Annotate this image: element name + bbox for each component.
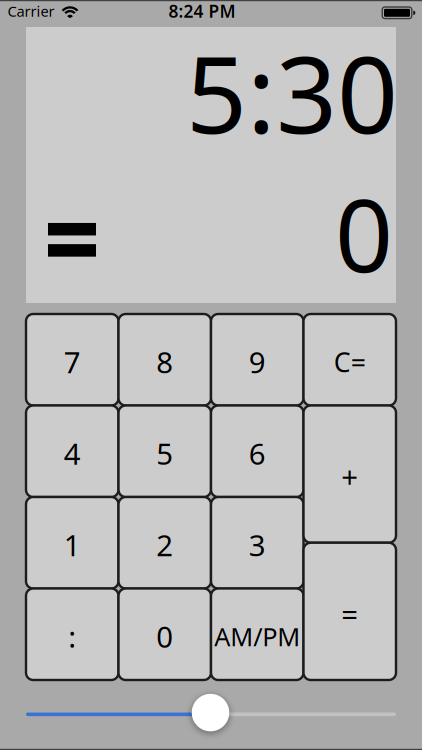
button[interactable]: + xyxy=(303,405,396,543)
button[interactable]: AM/PM xyxy=(211,588,303,680)
button[interactable]: 4 xyxy=(26,405,118,497)
staticText: 6 xyxy=(249,434,266,473)
button[interactable]: 9 xyxy=(211,314,303,405)
button[interactable]: = xyxy=(303,543,396,680)
button[interactable]: 6 xyxy=(211,405,303,497)
staticText: 8:24 PM xyxy=(168,0,235,22)
staticText: 4 xyxy=(64,434,81,473)
staticText: 2 xyxy=(156,525,173,564)
staticText: 5:30 xyxy=(186,21,398,163)
staticText: 0 xyxy=(335,166,393,300)
staticText: 7 xyxy=(64,342,81,381)
button[interactable]: 1 xyxy=(26,497,118,588)
staticText: AM/PM xyxy=(214,620,300,653)
staticText: 1 xyxy=(64,525,81,564)
staticText: : xyxy=(68,617,76,656)
button[interactable]: C= xyxy=(303,314,396,405)
staticText: 8 xyxy=(156,342,173,381)
button[interactable]: 7 xyxy=(26,314,118,405)
staticText: 0 xyxy=(156,617,173,656)
button[interactable]: 8 xyxy=(118,314,211,405)
button[interactable]: 3 xyxy=(211,497,303,588)
button[interactable]: 0 xyxy=(118,588,211,680)
button[interactable]: 5 xyxy=(118,405,211,497)
staticText: 3 xyxy=(249,525,266,564)
button[interactable]: : xyxy=(26,588,118,680)
staticText: 5 xyxy=(156,434,173,473)
button[interactable]: 2 xyxy=(118,497,211,588)
staticText: C= xyxy=(334,344,366,380)
staticText: Carrier xyxy=(7,1,54,21)
staticText: = xyxy=(341,594,358,633)
button[interactable]: Slider xyxy=(192,694,229,731)
staticText: + xyxy=(341,457,358,496)
staticText: 9 xyxy=(249,342,266,381)
